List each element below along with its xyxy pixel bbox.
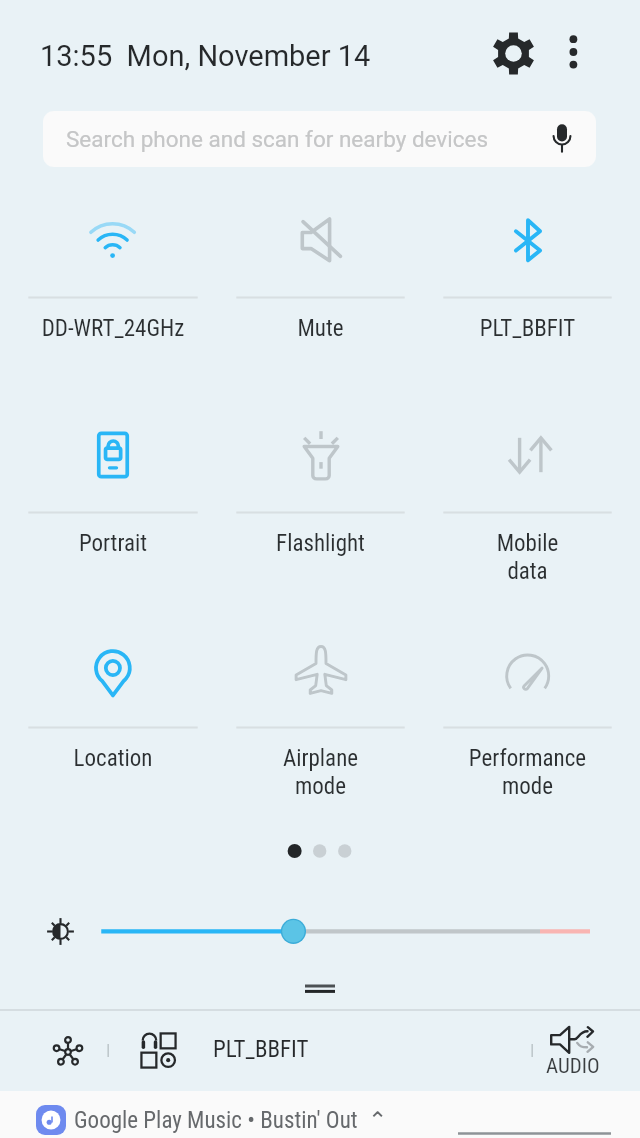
staticText: Performance mode (424, 745, 631, 800)
staticText: Search phone and scan for nearby devices (66, 126, 489, 152)
button[interactable]: Audio output (541, 1018, 603, 1082)
button[interactable]: Brightness slider (96, 906, 600, 956)
button[interactable]: Voice search (539, 116, 585, 162)
button[interactable]: Media output (135, 1027, 182, 1074)
button[interactable]: Smart view (43, 1027, 92, 1076)
button[interactable]: Airplane mode (217, 613, 424, 828)
staticText: Portrait (9, 530, 217, 557)
staticText: Mute (217, 315, 424, 342)
staticText: Flashlight (217, 530, 424, 557)
button[interactable]: Portrait (9, 398, 217, 613)
button[interactable]: Search phone and scan for nearby devices (43, 111, 596, 167)
button[interactable]: DD-WRT_24GHz (9, 183, 217, 398)
button[interactable]: Flashlight (217, 398, 424, 613)
staticText: PLT_BBFIT (424, 315, 631, 342)
staticText: PLT_BBFIT (213, 1036, 309, 1063)
staticText: 13:55 Mon, November 14 (40, 39, 371, 73)
button[interactable]: Brightness (38, 909, 83, 954)
staticText: Airplane mode (217, 745, 424, 800)
staticText: AUDIO (546, 1054, 600, 1079)
button[interactable]: Settings (482, 22, 544, 84)
button[interactable]: Mute (217, 183, 424, 398)
button[interactable]: PLT_BBFIT (424, 183, 631, 398)
staticText: Location (9, 745, 217, 772)
button[interactable]: Performance mode (424, 613, 631, 828)
staticText: DD-WRT_24GHz (9, 315, 217, 342)
button[interactable]: Location (9, 613, 217, 828)
staticText: Google Play Music • Bustin' Out ⌃ (74, 1107, 388, 1134)
button[interactable]: More options (551, 22, 596, 67)
button[interactable]: Page indicator (280, 838, 360, 864)
button[interactable]: Mobile data (424, 398, 631, 613)
staticText: Mobile data (424, 530, 631, 585)
